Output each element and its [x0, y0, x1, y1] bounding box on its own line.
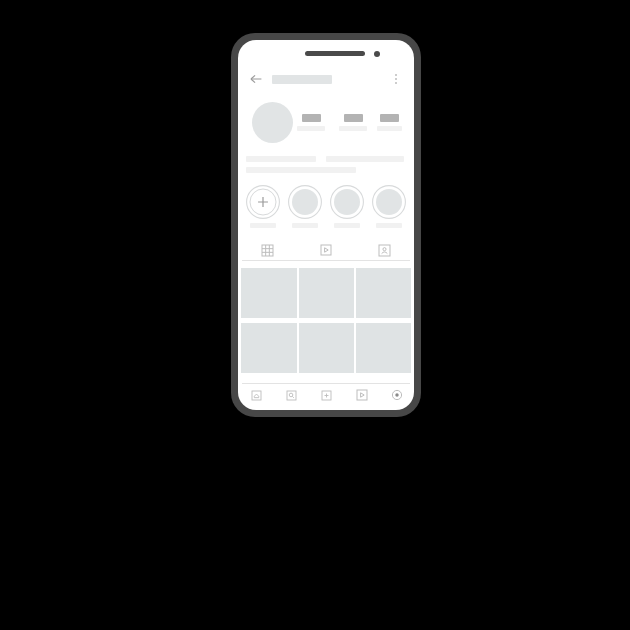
button[interactable] — [293, 114, 329, 131]
button[interactable]: Create — [309, 384, 344, 406]
button[interactable]: Reels — [296, 240, 355, 260]
button[interactable] — [335, 114, 371, 131]
button[interactable] — [377, 114, 402, 131]
button[interactable]: Highlight — [370, 185, 408, 228]
button[interactable]: Profile — [379, 384, 414, 406]
button[interactable]: New highlight — [244, 185, 282, 228]
button[interactable]: Tagged — [355, 240, 414, 260]
button[interactable]: Highlight — [328, 185, 366, 228]
button[interactable]: Reels — [344, 384, 379, 406]
button[interactable]: More options — [388, 71, 404, 87]
button[interactable]: Home — [238, 384, 274, 406]
button[interactable]: Grid — [238, 240, 296, 260]
button[interactable]: Profile picture — [252, 102, 293, 143]
button[interactable]: Search — [274, 384, 309, 406]
button[interactable]: Back — [248, 71, 264, 87]
button[interactable]: Highlight — [286, 185, 324, 228]
